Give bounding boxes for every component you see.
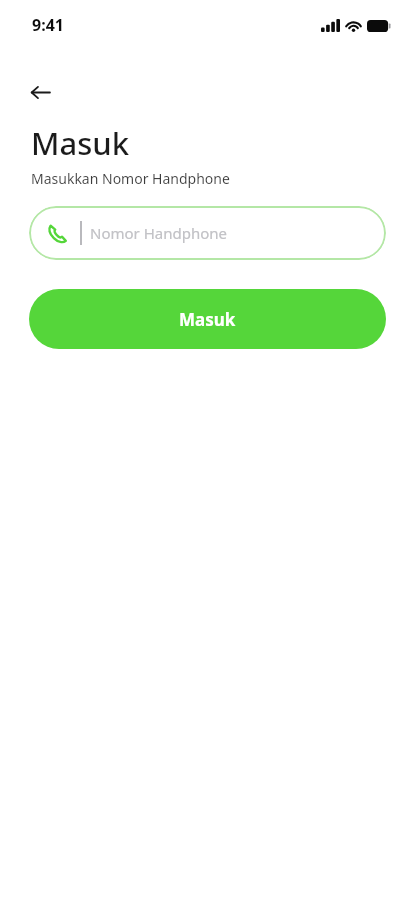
button[interactable]: Nomor Handphone bbox=[29, 206, 386, 260]
button[interactable]: Masuk bbox=[29, 289, 386, 349]
staticText: Masuk bbox=[179, 308, 236, 331]
staticText: Masuk bbox=[31, 122, 130, 164]
staticText: 9:41 bbox=[32, 14, 64, 36]
staticText: Masukkan Nomor Handphone bbox=[31, 169, 230, 188]
staticText: Nomor Handphone bbox=[90, 223, 227, 243]
button[interactable]: Back bbox=[20, 72, 60, 112]
